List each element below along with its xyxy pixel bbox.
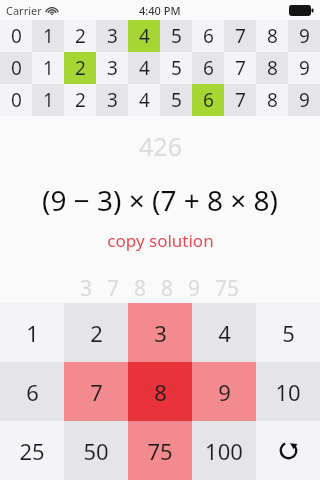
staticText: 4 (218, 318, 231, 348)
button[interactable]: 8 (128, 362, 192, 421)
staticText: 8 (267, 55, 278, 81)
staticText: 1 (43, 23, 54, 49)
button[interactable]: Reset (256, 421, 320, 480)
staticText: 8 (267, 23, 278, 49)
staticText: 4:40 PM (139, 3, 181, 18)
staticText: 2 (75, 55, 86, 81)
staticText: 1 (43, 87, 54, 113)
button[interactable]: 0 (0, 20, 32, 52)
button[interactable]: 7 (64, 362, 128, 421)
button[interactable]: 3 (96, 84, 128, 116)
staticText: 10 (275, 377, 301, 407)
button[interactable]: 25 (0, 421, 64, 480)
staticText: 9 (188, 274, 201, 303)
staticText: 9 (218, 377, 231, 407)
staticText: 5 (282, 318, 295, 348)
staticText: 0 (11, 23, 22, 49)
button[interactable]: 6 (192, 52, 224, 84)
button[interactable]: 7 (224, 84, 256, 116)
button[interactable]: 0 (0, 84, 32, 116)
staticText: 9 (299, 23, 310, 49)
staticText: 7 (235, 87, 246, 113)
staticText: 6 (203, 23, 214, 49)
button[interactable]: 9 (192, 362, 256, 421)
button[interactable]: 2 (64, 84, 96, 116)
button[interactable]: 1 (32, 52, 64, 84)
staticText: 426 (139, 129, 182, 163)
button[interactable]: 9 (288, 84, 320, 116)
button[interactable]: 7 (224, 20, 256, 52)
button[interactable]: 50 (64, 421, 128, 480)
button[interactable]: 4 (128, 84, 160, 116)
staticText: 2 (75, 23, 86, 49)
staticText: 7 (235, 55, 246, 81)
button[interactable]: 8 (256, 84, 288, 116)
button[interactable]: 1 (0, 303, 64, 362)
button[interactable]: 100 (192, 421, 256, 480)
staticText: 5 (171, 87, 182, 113)
button[interactable]: 2 (64, 20, 96, 52)
staticText: 6 (203, 87, 214, 113)
staticText: 1 (43, 55, 54, 81)
button[interactable]: 6 (192, 20, 224, 52)
staticText: 7 (107, 274, 120, 303)
staticText: 1 (26, 318, 39, 348)
button[interactable]: 75 (128, 421, 192, 480)
button[interactable]: 3 (96, 20, 128, 52)
button[interactable]: 0 (0, 52, 32, 84)
staticText: 3 (107, 23, 118, 49)
staticText: 6 (26, 377, 39, 407)
staticText: 3 (154, 318, 167, 348)
staticText: 3 (107, 87, 118, 113)
button[interactable]: 10 (256, 362, 320, 421)
staticText: 5 (171, 23, 182, 49)
button[interactable]: 2 (64, 303, 128, 362)
button[interactable]: 9 (288, 52, 320, 84)
button[interactable]: 5 (160, 20, 192, 52)
staticText: 4 (139, 23, 150, 49)
staticText: 4 (139, 55, 150, 81)
button[interactable]: 8 (256, 20, 288, 52)
staticText: 7 (90, 377, 103, 407)
button[interactable]: 5 (160, 84, 192, 116)
staticText: 9 (299, 55, 310, 81)
button[interactable]: 3 (96, 52, 128, 84)
button[interactable]: 2 (64, 52, 96, 84)
staticText: 100 (205, 436, 243, 466)
button[interactable]: 7 (224, 52, 256, 84)
button[interactable]: 1 (32, 84, 64, 116)
button[interactable]: 3 (128, 303, 192, 362)
staticText: 8 (161, 274, 174, 303)
button[interactable]: 4 (192, 303, 256, 362)
staticText: 0 (11, 55, 22, 81)
staticText: 6 (203, 55, 214, 81)
staticText: 75 (147, 436, 173, 466)
staticText: 4 (139, 87, 150, 113)
staticText: 2 (90, 318, 103, 348)
staticText: 7 (235, 23, 246, 49)
staticText: 3 (80, 274, 93, 303)
staticText: 8 (154, 377, 167, 407)
button[interactable]: copy solution (95, 227, 226, 254)
staticText: 25 (19, 436, 45, 466)
button[interactable]: 4 (128, 52, 160, 84)
button[interactable]: 5 (160, 52, 192, 84)
button[interactable]: 5 (256, 303, 320, 362)
staticText: (9 − 3) × (7 + 8 × 8) (42, 181, 278, 219)
staticText: 3 (107, 55, 118, 81)
staticText: 9 (299, 87, 310, 113)
button[interactable]: 1 (32, 20, 64, 52)
staticText: 8 (134, 274, 147, 303)
staticText: Carrier (6, 3, 42, 18)
staticText: 2 (75, 87, 86, 113)
staticText: copy solution (107, 229, 214, 252)
button[interactable]: 9 (288, 20, 320, 52)
staticText: 50 (83, 436, 109, 466)
button[interactable]: 4 (128, 20, 160, 52)
staticText: 5 (171, 55, 182, 81)
button[interactable]: 6 (192, 84, 224, 116)
staticText: 0 (11, 87, 22, 113)
button[interactable]: 6 (0, 362, 64, 421)
staticText: 8 (267, 87, 278, 113)
button[interactable]: 8 (256, 52, 288, 84)
